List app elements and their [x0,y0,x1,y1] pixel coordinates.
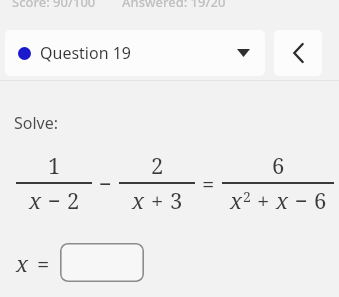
staticText: 6 [272,150,285,180]
staticText: x [230,185,243,215]
staticText: x [132,185,145,215]
staticText: x [276,185,289,215]
staticText: Question 19 [40,42,132,64]
staticText: + [257,185,270,215]
staticText: − [48,185,61,215]
staticText: + [151,185,164,215]
staticText: x [16,248,29,278]
staticText: x [29,185,42,215]
staticText: − [295,185,308,215]
staticText: 2 [67,185,80,215]
button[interactable]: Previous question [274,30,322,76]
staticText: = [202,168,215,198]
staticText: Solve: [14,112,59,134]
staticText: 2 [151,150,164,180]
staticText: Answered: 19/20 [122,0,226,11]
staticText: 6 [314,185,327,215]
staticText: 1 [48,150,61,180]
staticText: 2 [243,187,251,206]
staticText: Score: 90/100 [12,0,96,11]
staticText: 3 [170,185,183,215]
staticText: − [99,168,112,198]
staticText: = [37,248,50,278]
button[interactable]: Question 19 [5,30,265,76]
button[interactable]: Answer input [60,243,144,282]
